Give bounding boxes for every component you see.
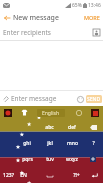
staticText: wxyz — [66, 156, 78, 163]
button[interactable]: 123? — [0, 167, 16, 183]
staticText: SEND — [87, 96, 101, 103]
button[interactable]: wxyz — [61, 151, 83, 167]
button[interactable]: SEND — [86, 95, 102, 103]
button[interactable]: ? — [83, 135, 103, 151]
staticText: 65% — [72, 2, 82, 9]
staticText: MORE — [84, 14, 100, 21]
button[interactable] — [0, 119, 16, 135]
staticText: 13:46 — [88, 2, 101, 9]
staticText: jkl — [47, 140, 53, 147]
staticText: abc — [45, 124, 54, 131]
button[interactable]: Theme — [0, 106, 16, 119]
button[interactable] — [0, 151, 16, 167]
staticText: New message — [13, 13, 59, 23]
staticText: Enter message — [11, 94, 57, 103]
staticText: Enter recipients — [3, 28, 51, 37]
button[interactable]: Back — [0, 11, 13, 24]
button[interactable] — [16, 119, 38, 135]
button[interactable]: Skins — [16, 106, 32, 119]
button[interactable] — [83, 119, 103, 135]
button[interactable]: MORE — [81, 14, 103, 21]
staticText: EN — [20, 172, 27, 179]
staticText: mno — [67, 140, 78, 147]
button[interactable] — [85, 167, 103, 183]
staticText: pqrs — [22, 156, 33, 163]
button[interactable]: def — [61, 119, 83, 135]
staticText: 123? — [3, 172, 14, 179]
button[interactable]: tuv — [38, 151, 61, 167]
button[interactable]: English — [37, 109, 65, 117]
staticText: ? — [92, 140, 95, 147]
button[interactable]: pqrs — [16, 151, 38, 167]
button[interactable]: Add recipients — [89, 25, 103, 39]
button[interactable]: ghi — [16, 135, 38, 151]
button[interactable] — [83, 151, 103, 167]
staticText: tuv — [46, 156, 54, 163]
staticText: ghi — [23, 140, 31, 147]
button[interactable]: jkl — [38, 135, 61, 151]
button[interactable]: Attach — [0, 93, 11, 104]
button[interactable]: Settings — [71, 106, 87, 119]
staticText: def — [68, 124, 76, 131]
button[interactable]: Keyboard mode — [87, 106, 103, 119]
staticText: English — [42, 110, 60, 117]
button[interactable]: EN — [16, 167, 31, 183]
button[interactable]: Emoji — [74, 93, 86, 105]
button[interactable]: ?!+ — [68, 167, 85, 183]
button[interactable]: mno — [61, 135, 83, 151]
staticText: ?!+ — [73, 172, 80, 179]
button[interactable] — [31, 167, 68, 183]
button[interactable]: abc — [38, 119, 61, 135]
